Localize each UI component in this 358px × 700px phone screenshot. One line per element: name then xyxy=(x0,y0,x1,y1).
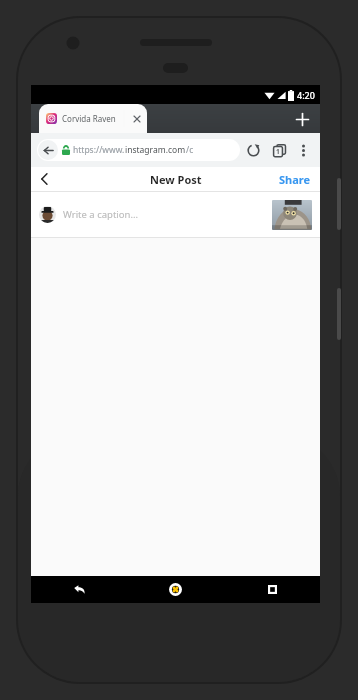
staticText: Write a caption... xyxy=(63,208,272,221)
button[interactable]: New tab xyxy=(292,109,312,129)
staticText: New Post xyxy=(150,172,202,187)
staticText: 4:20 xyxy=(297,89,315,101)
button[interactable]: Profile photo xyxy=(39,206,56,223)
button[interactable]: Recent apps xyxy=(250,576,294,603)
button[interactable]: Selected photo xyxy=(272,200,312,230)
staticText: https://www. xyxy=(73,144,125,156)
button[interactable]: More options xyxy=(292,139,314,161)
staticText: /c xyxy=(186,144,194,156)
staticText: Corvida Raven (@ xyxy=(62,113,120,124)
button[interactable]: Back xyxy=(37,139,240,161)
button[interactable]: Corvida Raven (@ xyxy=(39,104,147,133)
button[interactable]: Share xyxy=(270,167,320,191)
staticText: Share xyxy=(279,172,311,187)
button[interactable]: Reload xyxy=(240,137,266,163)
button[interactable]: Back xyxy=(57,576,101,603)
staticText: instagram.com xyxy=(125,144,186,156)
staticText: 1 xyxy=(276,147,280,156)
button[interactable]: Home xyxy=(153,576,197,603)
button[interactable]: Tabs xyxy=(266,137,292,163)
button[interactable]: Back xyxy=(31,167,57,191)
button[interactable]: Profile photo xyxy=(31,192,320,237)
button[interactable]: Back xyxy=(38,140,58,160)
button[interactable]: Close tab xyxy=(130,104,144,133)
